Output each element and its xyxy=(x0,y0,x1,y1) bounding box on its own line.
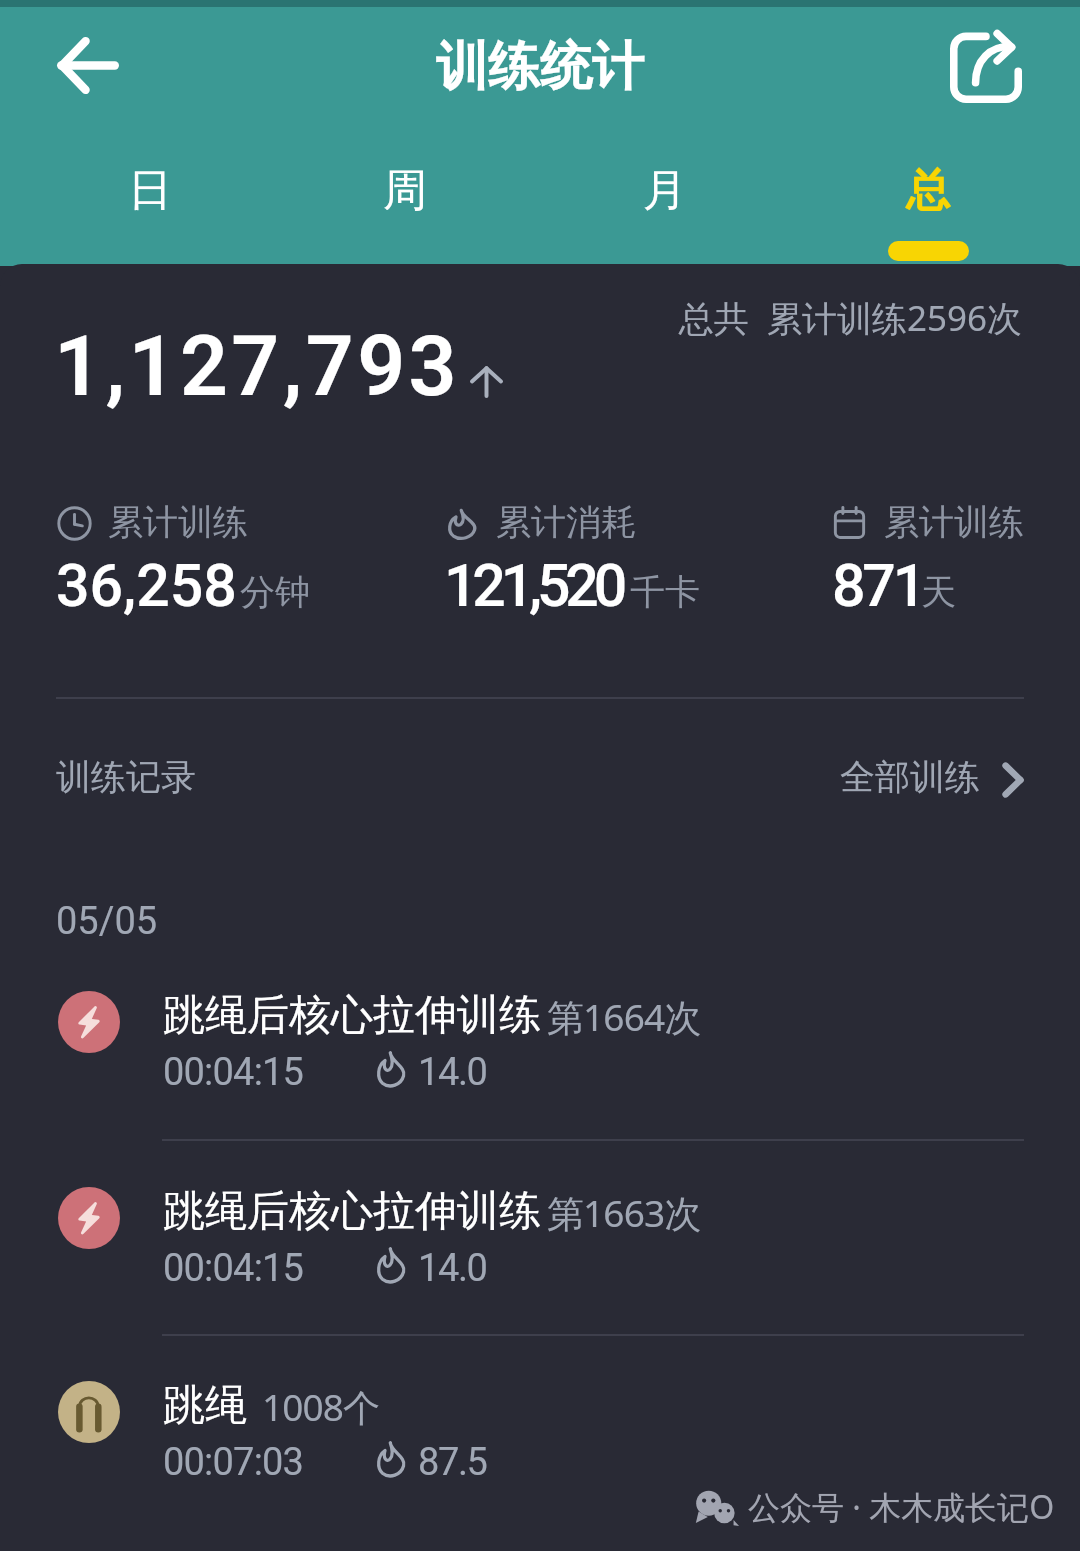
staticText: 36,258 xyxy=(56,551,237,620)
staticText: 周 xyxy=(383,163,427,218)
staticText: 全部训练 xyxy=(840,755,980,799)
staticText: 00:04:15 xyxy=(163,1050,304,1095)
staticText: 总共 累计训练2596次 xyxy=(0,294,1022,342)
staticText: 总 xyxy=(906,163,950,218)
staticText: 1,127,793 xyxy=(54,317,460,415)
button[interactable]: 月 xyxy=(601,144,729,266)
staticText: 月 xyxy=(643,163,687,218)
button[interactable]: 跳绳后核心拉伸训练 xyxy=(0,1185,1080,1365)
staticText: 累计消耗 xyxy=(496,500,636,544)
button[interactable]: 跳绳后核心拉伸训练 xyxy=(0,989,1080,1169)
button[interactable]: 跳绳 xyxy=(0,1379,1080,1551)
staticText: 121,520 xyxy=(444,551,622,620)
staticText: 1008个 xyxy=(262,1381,380,1432)
staticText: 分钟 xyxy=(240,570,310,614)
button[interactable]: 日 xyxy=(86,144,214,266)
button[interactable]: 总 xyxy=(864,144,992,266)
staticText: 累计训练 xyxy=(884,500,1024,544)
staticText: 第1663次 xyxy=(547,1187,701,1238)
staticText: 累计训练 xyxy=(108,500,248,544)
staticText: 训练统计 xyxy=(0,34,1080,100)
staticText: 公众号 · 木木成长记O xyxy=(748,1485,1055,1529)
button[interactable]: Back xyxy=(24,16,124,116)
staticText: 05/05 xyxy=(56,899,158,944)
button[interactable]: 周 xyxy=(341,144,469,266)
staticText: 训练记录 xyxy=(56,755,196,799)
staticText: 14.0 xyxy=(418,1246,487,1291)
staticText: 千卡 xyxy=(630,570,700,614)
staticText: 14.0 xyxy=(418,1050,487,1095)
staticText: 天 xyxy=(921,570,956,614)
staticText: 871 xyxy=(832,551,923,620)
staticText: 00:04:15 xyxy=(163,1246,304,1291)
staticText: 跳绳后核心拉伸训练 xyxy=(163,1185,541,1238)
button[interactable]: 训练记录 xyxy=(0,722,1080,832)
staticText: 00:07:03 xyxy=(163,1440,304,1485)
button[interactable]: Share xyxy=(935,16,1040,121)
staticText: 日 xyxy=(128,163,172,218)
staticText: 跳绳 xyxy=(163,1379,247,1432)
staticText: 87.5 xyxy=(418,1440,487,1485)
staticText: 跳绳后核心拉伸训练 xyxy=(163,989,541,1042)
staticText: 第1664次 xyxy=(547,991,701,1042)
